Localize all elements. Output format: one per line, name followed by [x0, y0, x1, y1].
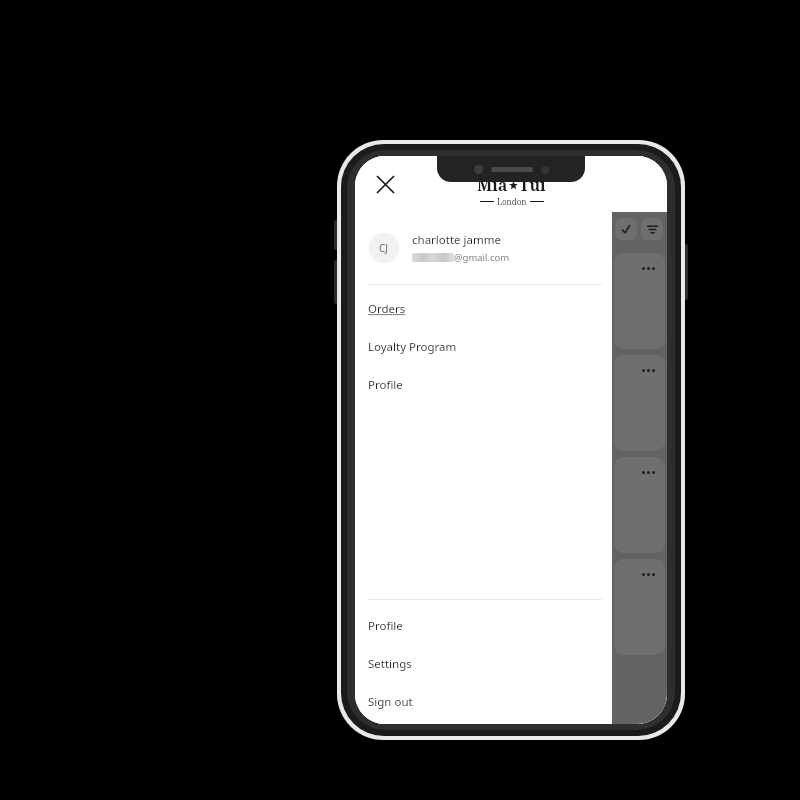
staticText: Settings [368, 656, 412, 672]
button[interactable]: CJ [355, 226, 612, 270]
staticText: Orders [368, 301, 406, 317]
button[interactable]: MiaTui London logo [477, 174, 546, 207]
button[interactable]: Profile [355, 618, 612, 634]
button[interactable]: Close [363, 162, 407, 206]
staticText: Tui [519, 174, 546, 196]
staticText: Profile [368, 618, 403, 634]
button[interactable]: Profile [355, 377, 612, 393]
button[interactable]: Settings [355, 656, 612, 672]
staticText: Loyalty Program [368, 339, 457, 355]
button[interactable]: Orders [355, 301, 612, 317]
staticText: CJ [379, 241, 389, 255]
staticText: Sign out [368, 694, 413, 710]
staticText: London [497, 196, 527, 207]
staticText: @gmail.com [454, 251, 510, 264]
button[interactable]: Loyalty Program [355, 339, 612, 355]
button[interactable]: Sign out [355, 694, 612, 710]
staticText: charlotte jamme [412, 232, 501, 248]
staticText: Mia [477, 174, 508, 196]
staticText: Profile [368, 377, 403, 393]
button[interactable]: Close navigation drawer [612, 212, 667, 724]
